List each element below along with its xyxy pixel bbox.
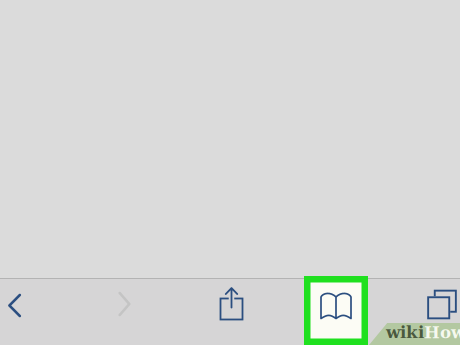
button[interactable]: Bookmarks: [304, 276, 368, 345]
button[interactable]: Forward: [95, 271, 153, 337]
staticText: wiki: [386, 323, 424, 342]
button[interactable]: Back: [0, 272, 44, 338]
button[interactable]: Tabs: [413, 271, 460, 337]
button[interactable]: Share: [202, 271, 260, 337]
staticText: How: [424, 323, 460, 342]
